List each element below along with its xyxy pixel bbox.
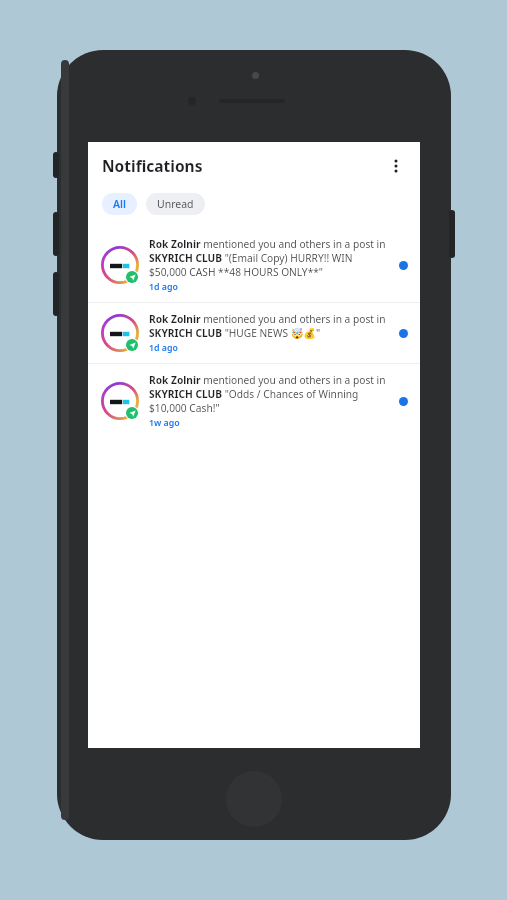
- button[interactable]: Rok Zolnir mentioned you and others in a…: [88, 364, 420, 438]
- staticText: 1d ago: [149, 281, 178, 293]
- button[interactable]: Rok Zolnir mentioned you and others in a…: [88, 303, 420, 363]
- button[interactable]: Unread: [146, 193, 205, 215]
- staticText: 1d ago: [149, 342, 178, 354]
- staticText: Unread: [157, 197, 194, 211]
- staticText: Rok Zolnir mentioned you and others in a…: [149, 237, 391, 279]
- staticText: Rok Zolnir mentioned you and others in a…: [149, 312, 391, 340]
- button[interactable]: More options: [380, 150, 412, 182]
- staticText: 1w ago: [149, 417, 180, 429]
- staticText: Rok Zolnir mentioned you and others in a…: [149, 373, 391, 415]
- button[interactable]: All: [102, 193, 137, 215]
- staticText: All: [113, 197, 126, 211]
- staticText: Notifications: [102, 155, 203, 176]
- button[interactable]: Rok Zolnir mentioned you and others in a…: [88, 228, 420, 302]
